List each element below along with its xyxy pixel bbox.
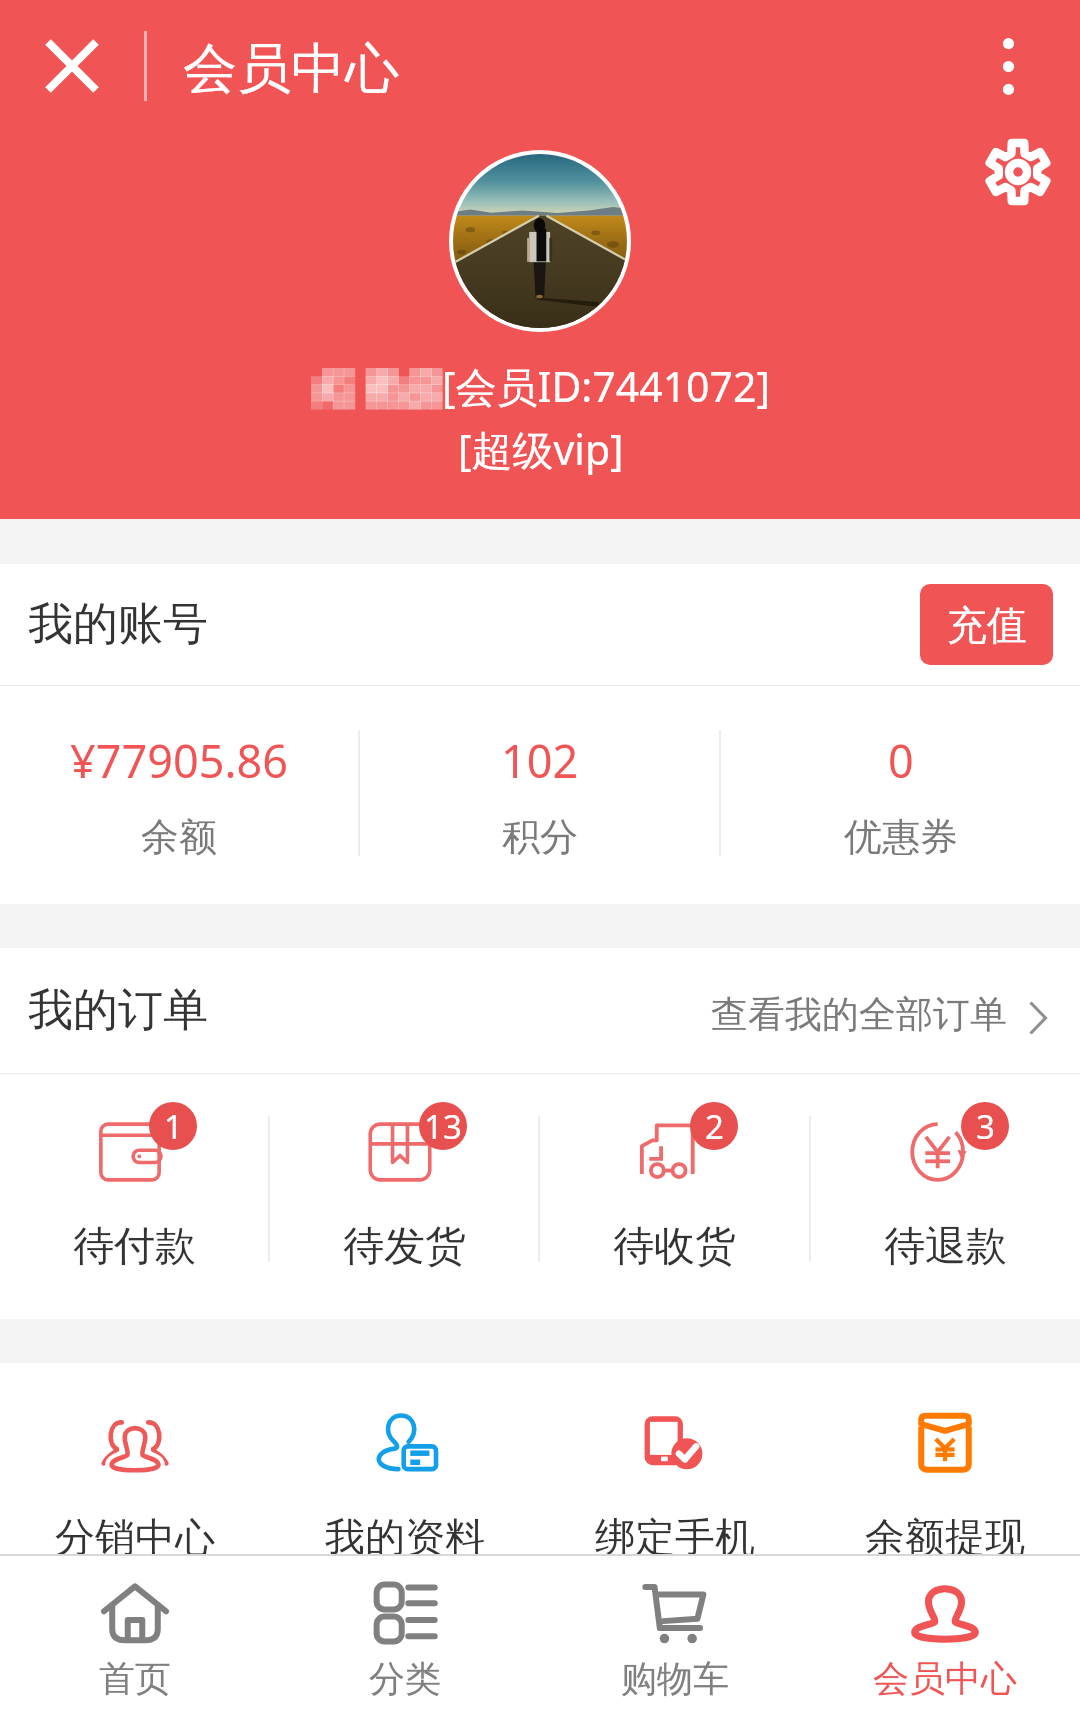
button[interactable]: 充值 <box>920 584 1053 665</box>
button[interactable]: 0 <box>721 686 1080 904</box>
staticText: 余额 <box>141 813 217 861</box>
button[interactable]: More options <box>948 6 1068 126</box>
staticText: 102 <box>501 730 579 791</box>
staticText: 13 <box>424 1104 462 1149</box>
staticText: 余额提现 <box>865 1512 1025 1562</box>
button[interactable]: 会员中心 <box>810 1556 1080 1717</box>
staticText: 会员中心 <box>873 1656 1017 1701</box>
staticText: 查看我的全部订单 <box>711 991 1007 1038</box>
staticText: 优惠券 <box>844 813 958 861</box>
button[interactable]: 我的资料 <box>270 1363 540 1583</box>
staticText: 首页 <box>99 1656 171 1701</box>
button[interactable]: 13 <box>270 1074 538 1319</box>
staticText: 待退款 <box>884 1221 1007 1273</box>
staticText: ¥77905.86 <box>70 730 288 791</box>
button[interactable]: 2 <box>540 1074 809 1319</box>
staticText: 积分 <box>502 813 578 861</box>
button[interactable]: 分销中心 <box>0 1363 270 1583</box>
button[interactable]: 购物车 <box>540 1556 810 1717</box>
staticText: 我的资料 <box>325 1512 485 1562</box>
staticText: [会员ID:7441072] <box>442 358 770 414</box>
staticText: 1 <box>164 1104 183 1149</box>
button[interactable]: 首页 <box>0 1556 270 1717</box>
staticText: 我的账号 <box>28 596 208 653</box>
button[interactable]: Avatar <box>449 150 631 332</box>
staticText: [超级vip] <box>458 421 624 477</box>
staticText: 分类 <box>369 1656 441 1701</box>
staticText: 我的订单 <box>28 982 208 1039</box>
button[interactable]: Close <box>0 0 144 132</box>
staticText: 会员中心 <box>183 35 399 103</box>
button[interactable]: 余额提现 <box>810 1363 1080 1583</box>
staticText: 分销中心 <box>55 1512 215 1562</box>
button[interactable]: 我的订单 <box>0 948 1080 1073</box>
staticText: 充值 <box>947 600 1027 650</box>
button[interactable]: 102 <box>360 686 719 904</box>
staticText: 2 <box>705 1104 724 1149</box>
staticText: 3 <box>976 1104 995 1149</box>
button[interactable]: 3 <box>811 1074 1080 1319</box>
button[interactable]: 1 <box>0 1074 268 1319</box>
staticText: 购物车 <box>621 1656 729 1701</box>
button[interactable]: ¥77905.86 <box>0 686 358 904</box>
staticText: 0 <box>888 730 914 791</box>
staticText: 待发货 <box>343 1221 466 1273</box>
button[interactable]: 分类 <box>270 1556 540 1717</box>
staticText: 待付款 <box>73 1221 196 1273</box>
staticText: 绑定手机 <box>595 1512 755 1562</box>
staticText: 待收货 <box>613 1221 736 1273</box>
button[interactable]: Settings <box>966 120 1070 224</box>
button[interactable]: 绑定手机 <box>540 1363 810 1583</box>
